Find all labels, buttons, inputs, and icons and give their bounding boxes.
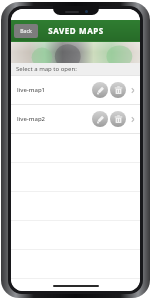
button[interactable]: Back [14,24,38,38]
button[interactable]: live-map1 [11,76,140,104]
staticText: Back [20,28,32,35]
button[interactable]: Delete map [110,82,126,98]
button[interactable]: live-map2 [11,105,140,133]
staticText: Select a map to open: [16,65,77,73]
button[interactable]: Rename map [92,111,108,127]
button[interactable]: Delete map [110,111,126,127]
staticText: live-map2 [17,115,46,123]
staticText: live-map1 [17,86,46,94]
button[interactable]: Rename map [92,82,108,98]
staticText: SAVED MAPS [48,25,104,36]
